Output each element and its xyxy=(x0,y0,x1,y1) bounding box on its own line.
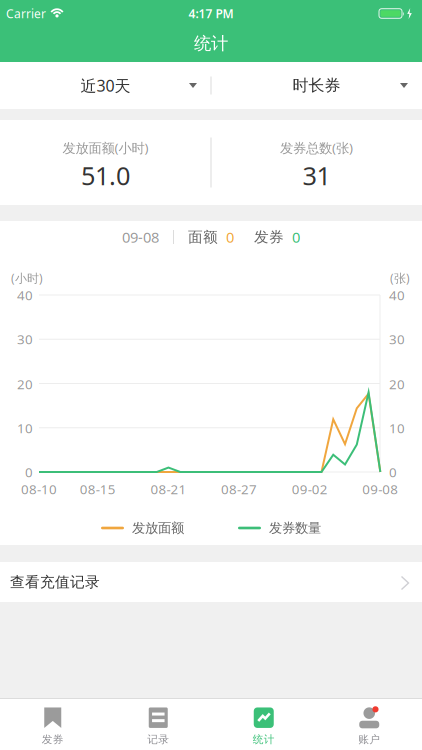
staticText: 0 xyxy=(25,463,33,481)
staticText: 09-08 xyxy=(122,227,159,247)
staticText: 20 xyxy=(17,375,33,393)
staticText: 51.0 xyxy=(81,158,130,192)
staticText: 31 xyxy=(302,158,330,192)
staticText: 08-21 xyxy=(150,480,186,498)
staticText: 发放面额 xyxy=(132,520,184,536)
staticText: 09-02 xyxy=(292,480,328,498)
button[interactable]: 发券 xyxy=(0,699,105,750)
button[interactable]: 记录 xyxy=(105,699,211,750)
button[interactable]: 查看充值记录 xyxy=(0,562,422,602)
staticText: 近30天 xyxy=(80,75,130,96)
staticText: 0 xyxy=(389,463,397,481)
staticText: 08-10 xyxy=(21,480,57,498)
staticText: 统计 xyxy=(253,733,275,746)
staticText: 发券 xyxy=(254,228,284,246)
staticText: 4:17 PM xyxy=(188,5,233,21)
staticText: (小时) xyxy=(11,270,43,286)
staticText: 08-15 xyxy=(80,480,116,498)
staticText: 40 xyxy=(17,286,33,304)
button[interactable]: 统计 xyxy=(211,699,316,750)
staticText: 10 xyxy=(389,419,405,437)
staticText: 0 xyxy=(292,227,300,247)
staticText: 面额 xyxy=(188,228,218,246)
staticText: 查看充值记录 xyxy=(10,573,100,591)
staticText: 30 xyxy=(389,330,405,348)
button[interactable]: 近30天 xyxy=(0,62,211,109)
staticText: 40 xyxy=(389,286,405,304)
staticText: 0 xyxy=(226,227,234,247)
button[interactable]: 账户 xyxy=(316,699,422,750)
staticText: 时长券 xyxy=(292,76,340,95)
staticText: 记录 xyxy=(147,733,169,746)
staticText: 发放面额(小时) xyxy=(62,139,148,156)
staticText: 发券数量 xyxy=(269,520,321,536)
button[interactable]: 时长券 xyxy=(211,62,422,109)
staticText: 30 xyxy=(17,330,33,348)
staticText: Carrier xyxy=(6,5,46,21)
staticText: 09-08 xyxy=(362,480,398,498)
staticText: (张) xyxy=(390,270,410,286)
staticText: 账户 xyxy=(358,733,380,746)
staticText: 10 xyxy=(17,419,33,437)
staticText: 统计 xyxy=(194,33,228,54)
staticText: 发券 xyxy=(42,733,64,746)
staticText: 20 xyxy=(389,375,405,393)
staticText: 发券总数(张) xyxy=(280,139,353,156)
staticText: 08-27 xyxy=(221,480,257,498)
